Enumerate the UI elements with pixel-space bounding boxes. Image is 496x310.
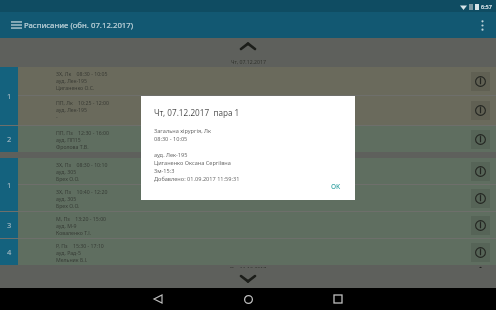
staticText: Циганенко О.С. bbox=[56, 84, 95, 91]
staticText: ауд. 305 bbox=[56, 168, 77, 175]
staticText: ауд. М-9 bbox=[56, 222, 77, 229]
button[interactable]: ПП, Лк 10:25 - 12:00 bbox=[18, 96, 496, 125]
button[interactable]: ЗХ, Лк 08:30 - 10:05 bbox=[18, 67, 496, 95]
button[interactable]: Информация bbox=[471, 101, 490, 120]
button[interactable]: Обзор bbox=[293, 288, 383, 310]
staticText: 2 bbox=[7, 134, 12, 144]
staticText: Мельник Б.І. bbox=[56, 256, 88, 263]
button[interactable]: М, Пз 13:20 - 15:00 bbox=[18, 212, 496, 238]
button[interactable]: Информация bbox=[471, 243, 490, 262]
staticText: Коваленко Т.І. bbox=[56, 229, 92, 236]
staticText: Расписание (обн. 07.12.2017) bbox=[24, 20, 134, 31]
staticText: ауд. 305 bbox=[56, 195, 77, 202]
button[interactable]: Назад bbox=[113, 288, 203, 310]
staticText: Чт, 07.12.2017 bbox=[231, 58, 266, 65]
staticText: ауд. Лек-195 bbox=[154, 151, 188, 159]
staticText: ауд. ПП15 bbox=[56, 136, 81, 143]
staticText: Загальна хірургія, Лк bbox=[154, 127, 211, 135]
button[interactable]: Информация bbox=[471, 130, 490, 149]
button[interactable]: Р, Пз 15:30 - 17:10 bbox=[18, 239, 496, 265]
staticText: 4 bbox=[7, 247, 12, 257]
button[interactable]: Вниз bbox=[0, 268, 496, 288]
staticText: 3 bbox=[7, 220, 12, 230]
staticText: Брex О.О. bbox=[56, 202, 80, 209]
staticText: ауд. Лек-195 bbox=[56, 77, 87, 84]
staticText: Чт, 07.12.2017 пара 1 bbox=[154, 107, 240, 118]
button[interactable]: Меню bbox=[6, 15, 26, 35]
button[interactable]: Информация bbox=[471, 189, 490, 208]
staticText: ПП, Пз 12:30 - 16:00 bbox=[56, 129, 109, 136]
staticText: Брex О.О. bbox=[56, 175, 80, 182]
staticText: М, Пз 13:20 - 15:00 bbox=[56, 215, 107, 222]
staticText: 6:57 bbox=[481, 3, 492, 10]
staticText: Фролова Т.В. bbox=[56, 143, 89, 150]
staticText: ПП, Лк 10:25 - 12:00 bbox=[56, 99, 110, 106]
button[interactable]: Чт, 07.12.2017 пара 1 bbox=[141, 96, 355, 200]
button[interactable]: OK bbox=[325, 179, 347, 194]
staticText: Р, Пз 15:30 - 17:10 bbox=[56, 242, 104, 249]
staticText: 08:30 - 10:05 bbox=[154, 135, 188, 143]
staticText: ауд. Лек-195 bbox=[56, 106, 87, 113]
staticText: Циганенко Оксана Сергіївна bbox=[154, 159, 231, 167]
staticText: ЗХ, Лк 08:30 - 10:05 bbox=[56, 70, 108, 77]
staticText: Добавлено: 01.09.2017 11:59:31 bbox=[154, 175, 240, 183]
button[interactable]: Ещё bbox=[472, 15, 492, 35]
staticText: OK bbox=[331, 182, 341, 191]
button[interactable]: Главный экран bbox=[203, 288, 293, 310]
staticText: 1 bbox=[7, 180, 12, 190]
button[interactable]: ПП, Пз 12:30 - 16:00 bbox=[18, 126, 496, 152]
staticText: ауд. Рад-5 bbox=[56, 249, 81, 256]
button[interactable]: Информация bbox=[471, 72, 490, 91]
button[interactable]: ЗХ, Пз 08:30 - 10:10 bbox=[18, 158, 496, 184]
staticText: 1 bbox=[7, 91, 12, 101]
staticText: - bbox=[56, 113, 58, 120]
staticText: Пн, 11.12.2017 bbox=[230, 265, 267, 268]
button[interactable]: Информация bbox=[471, 216, 490, 235]
button[interactable]: Информация bbox=[471, 162, 490, 181]
button[interactable]: Вверх bbox=[0, 38, 496, 55]
staticText: ЗХ, Пз 10:40 - 12:20 bbox=[56, 188, 108, 195]
button[interactable]: ЗХ, Пз 10:40 - 12:20 bbox=[18, 185, 496, 211]
staticText: Зм-15:3 bbox=[154, 167, 175, 175]
staticText: ЗХ, Пз 08:30 - 10:10 bbox=[56, 161, 108, 168]
